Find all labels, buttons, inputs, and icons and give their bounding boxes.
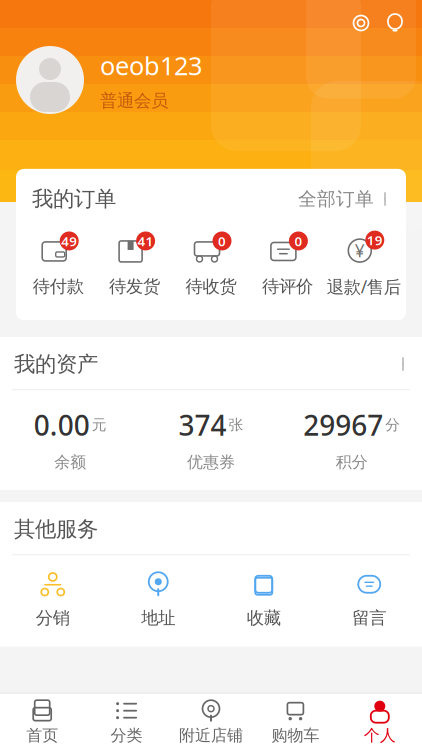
button[interactable]: 留言: [316, 569, 422, 630]
button[interactable]: Settings: [344, 6, 378, 40]
staticText: 优惠券: [187, 452, 235, 472]
button[interactable]: 我的订单: [16, 169, 406, 226]
staticText: 41: [138, 232, 154, 250]
staticText: 待评价: [262, 276, 313, 297]
staticText: 普通会员: [100, 90, 168, 111]
staticText: ¥: [355, 239, 365, 262]
staticText: 待付款: [33, 276, 84, 297]
staticText: 待收货: [185, 276, 236, 297]
staticText: 我的资产: [14, 351, 98, 377]
staticText: 首页: [26, 726, 58, 745]
button[interactable]: 29967: [281, 404, 422, 474]
staticText: 留言: [352, 607, 386, 628]
staticText: 分: [385, 416, 400, 434]
button[interactable]: 0.00: [0, 404, 141, 474]
staticText: 退款/售后: [327, 275, 401, 298]
staticText: 待发货: [109, 276, 160, 297]
staticText: 购物车: [271, 726, 319, 745]
staticText: 个人: [364, 726, 396, 745]
button[interactable]: 我的资产: [0, 337, 422, 389]
staticText: 余额: [54, 452, 86, 472]
staticText: 张: [228, 416, 243, 434]
button[interactable]: 地址: [105, 569, 211, 630]
button[interactable]: 374: [141, 404, 281, 474]
staticText: 其他服务: [14, 516, 98, 542]
staticText: 分销: [36, 607, 70, 628]
button[interactable]: 41: [96, 227, 173, 301]
button[interactable]: ¥: [326, 226, 402, 302]
staticText: 29967: [303, 406, 383, 443]
staticText: 附近店铺: [179, 726, 243, 745]
staticText: 49: [61, 232, 77, 250]
staticText: 0: [218, 232, 226, 250]
button[interactable]: 49: [20, 227, 96, 301]
staticText: 分类: [111, 726, 143, 745]
staticText: 0.00: [34, 406, 90, 443]
staticText: 我的订单: [32, 186, 116, 212]
button[interactable]: 分类: [84, 694, 169, 750]
button[interactable]: 分销: [0, 569, 105, 630]
staticText: 19: [367, 231, 383, 249]
button[interactable]: 购物车: [253, 694, 338, 750]
button[interactable]: 0: [249, 227, 326, 301]
button[interactable]: 0: [173, 227, 249, 301]
staticText: 全部订单: [298, 187, 374, 210]
staticText: 收藏: [247, 607, 281, 628]
button[interactable]: Notifications: [378, 6, 412, 40]
staticText: 0: [294, 232, 302, 250]
staticText: 元: [92, 416, 107, 434]
button[interactable]: 收藏: [211, 569, 316, 630]
staticText: 地址: [141, 607, 175, 628]
staticText: oeob123: [100, 48, 202, 82]
staticText: 374: [178, 406, 226, 443]
button[interactable]: 个人: [338, 694, 422, 750]
button[interactable]: 附近店铺: [169, 694, 253, 750]
staticText: 积分: [336, 452, 368, 472]
button[interactable]: 首页: [0, 694, 84, 750]
